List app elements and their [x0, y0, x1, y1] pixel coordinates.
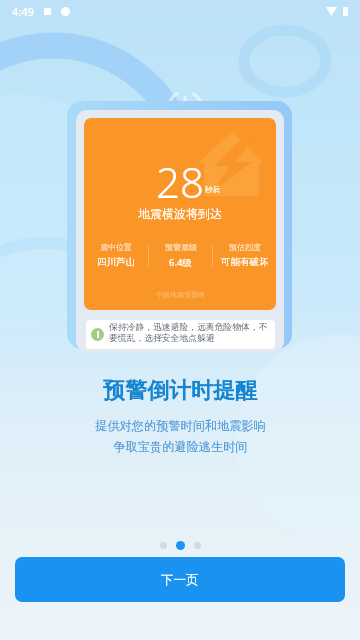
staticText: 预估烈度	[229, 242, 261, 252]
staticText: 可能有破坏	[221, 256, 269, 268]
staticText: 预警倒计时提醒	[103, 377, 257, 405]
staticText: 下一页	[161, 572, 199, 588]
button[interactable]: 下一页	[15, 557, 345, 602]
staticText: 28	[156, 153, 204, 210]
staticText: 6.4级	[169, 256, 192, 269]
staticText: 四川芦山	[97, 256, 135, 268]
staticText: 4:49	[12, 4, 34, 19]
staticText: 中国地震预警网	[156, 290, 205, 299]
staticText: 震中位置	[100, 242, 132, 252]
staticText: 地震横波将到达	[138, 206, 222, 221]
staticText: 预警震级	[165, 242, 197, 252]
staticText: 保持冷静，迅速避险，远离危险物体，不 要慌乱，选择安全地点躲避	[109, 322, 268, 344]
staticText: 秒后	[205, 185, 220, 194]
staticText: 提供对您的预警时间和地震影响 争取宝贵的避险逃生时间	[95, 418, 266, 454]
